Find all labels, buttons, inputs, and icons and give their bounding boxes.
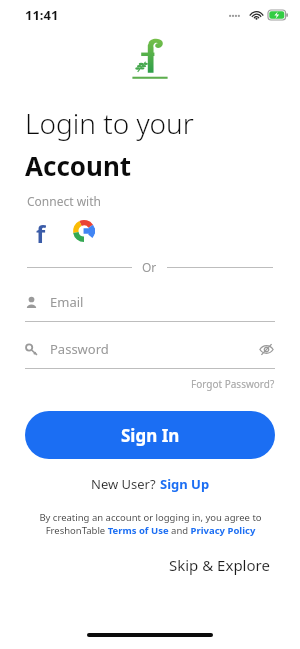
staticText: f	[36, 217, 46, 245]
staticText: New User?	[91, 475, 160, 493]
staticText: Sign Up	[160, 475, 210, 493]
button[interactable]: Email	[25, 291, 275, 322]
staticText: Password	[50, 340, 109, 358]
button[interactable]: Sign in with Facebook	[27, 217, 55, 245]
button[interactable]: Sign in with Google	[71, 218, 97, 244]
staticText: Account	[25, 148, 132, 183]
button[interactable]: By creating an account or logging in, yo…	[39, 511, 262, 537]
button[interactable]: Password	[25, 338, 275, 369]
button[interactable]: Forgot Password?	[191, 377, 275, 391]
button[interactable]: Skip & Explore	[169, 555, 270, 575]
button[interactable]: New User?	[91, 475, 210, 493]
staticText: Sign In	[121, 424, 180, 447]
staticText: Email	[50, 293, 84, 311]
button[interactable]: Show password	[257, 340, 275, 358]
staticText: Or	[142, 259, 157, 275]
staticText: Login to your	[25, 104, 194, 142]
staticText: Connect with	[27, 193, 101, 209]
staticText: 11:41	[25, 6, 59, 24]
button[interactable]: Sign In	[25, 411, 275, 459]
